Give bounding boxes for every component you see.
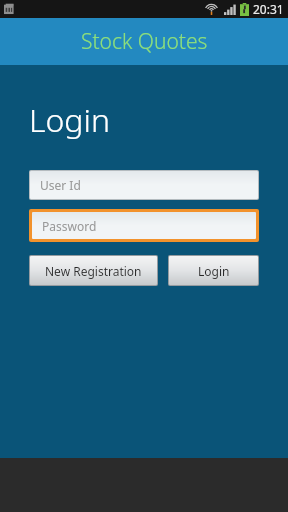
button[interactable]: New Registration	[29, 255, 158, 286]
staticText: New Registration	[45, 263, 142, 279]
button[interactable]: User Id	[29, 170, 259, 200]
staticText: Login	[29, 98, 110, 142]
staticText: 20:31	[253, 1, 284, 17]
staticText: User Id	[40, 177, 81, 193]
button[interactable]: Login	[168, 255, 259, 286]
button[interactable]: Password	[29, 209, 259, 242]
staticText: Login	[198, 263, 230, 279]
other: Storage	[4, 3, 16, 15]
staticText: Stock Quotes	[81, 27, 208, 56]
staticText: Password	[42, 218, 97, 234]
